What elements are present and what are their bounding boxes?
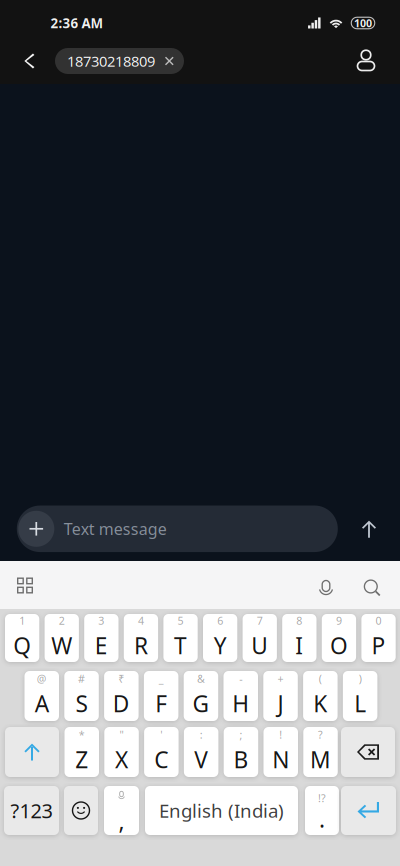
button[interactable]: Toolbar menu bbox=[5, 565, 45, 605]
staticText: A bbox=[35, 688, 49, 719]
button[interactable]: 3 bbox=[84, 614, 118, 662]
button[interactable]: # bbox=[64, 671, 99, 721]
button[interactable]: ( bbox=[303, 671, 338, 721]
staticText: ?123 bbox=[10, 797, 52, 824]
staticText: H bbox=[232, 688, 249, 719]
button[interactable]: Voice input bbox=[306, 566, 346, 606]
button[interactable]: Emoji bbox=[64, 786, 98, 835]
button[interactable]: _ bbox=[144, 671, 178, 721]
button[interactable]: Period bbox=[305, 786, 339, 835]
button[interactable]: 7 bbox=[243, 614, 277, 662]
button[interactable]: ?123 bbox=[4, 786, 59, 835]
button[interactable]: Add attachment bbox=[18, 511, 54, 547]
staticText: V bbox=[194, 744, 208, 775]
staticText: U bbox=[251, 630, 268, 660]
staticText: Text message bbox=[64, 518, 167, 539]
button[interactable]: English (India) bbox=[145, 786, 298, 835]
staticText: M bbox=[310, 744, 331, 775]
staticText: " bbox=[119, 727, 123, 742]
staticText: R bbox=[134, 630, 148, 660]
staticText: Z bbox=[75, 744, 88, 775]
staticText: K bbox=[313, 688, 327, 719]
staticText: T bbox=[174, 630, 187, 660]
staticText: @ bbox=[37, 671, 47, 686]
staticText: ? bbox=[318, 727, 323, 742]
staticText: L bbox=[354, 688, 366, 719]
staticText: I bbox=[295, 630, 303, 660]
staticText: 1 bbox=[19, 613, 25, 628]
staticText: 6 bbox=[217, 613, 223, 628]
button[interactable]: 5 bbox=[163, 614, 198, 662]
button[interactable]: Shift bbox=[5, 727, 59, 777]
staticText: E bbox=[95, 630, 108, 660]
staticText: - bbox=[239, 671, 242, 686]
staticText: O bbox=[330, 630, 348, 660]
staticText: ) bbox=[359, 671, 362, 686]
staticText: ₹ bbox=[118, 671, 124, 686]
staticText: !? bbox=[318, 791, 326, 805]
button[interactable]: @ bbox=[24, 671, 59, 721]
staticText: C bbox=[154, 744, 168, 775]
staticText: + bbox=[277, 671, 283, 686]
button[interactable]: 9 bbox=[322, 614, 356, 662]
staticText: # bbox=[78, 671, 85, 686]
staticText: ' bbox=[160, 727, 162, 742]
button[interactable]: ' bbox=[144, 727, 179, 777]
staticText: ; bbox=[239, 727, 242, 742]
button[interactable]: - bbox=[223, 671, 258, 721]
staticText: F bbox=[155, 688, 167, 719]
button[interactable]: Contact details bbox=[346, 39, 386, 83]
staticText: * bbox=[79, 727, 85, 742]
staticText: 3 bbox=[98, 613, 104, 628]
button[interactable]: ; bbox=[224, 727, 258, 777]
staticText: 9 bbox=[336, 613, 342, 628]
button[interactable]: Comma bbox=[104, 786, 139, 835]
button[interactable]: ₹ bbox=[104, 671, 139, 721]
staticText: 100 bbox=[354, 16, 372, 30]
button[interactable]: + bbox=[263, 671, 298, 721]
staticText: 0 bbox=[376, 613, 382, 628]
staticText: _ bbox=[159, 671, 164, 686]
staticText: 8 bbox=[296, 613, 302, 628]
button[interactable]: ! bbox=[263, 727, 298, 777]
button[interactable]: & bbox=[184, 671, 218, 721]
button[interactable]: 2 bbox=[45, 614, 79, 662]
staticText: Q bbox=[13, 630, 31, 660]
staticText: Y bbox=[214, 630, 227, 660]
staticText: 2 bbox=[59, 613, 65, 628]
button[interactable]: 1 bbox=[5, 614, 39, 662]
staticText: W bbox=[51, 630, 72, 660]
staticText: G bbox=[192, 688, 209, 719]
button[interactable]: Send bbox=[347, 507, 391, 551]
button[interactable]: Search bbox=[351, 566, 391, 606]
staticText: ! bbox=[279, 727, 282, 742]
staticText: X bbox=[115, 744, 128, 775]
button[interactable]: ) bbox=[343, 671, 377, 721]
button[interactable]: Backspace bbox=[341, 727, 395, 777]
button[interactable]: : bbox=[184, 727, 218, 777]
staticText: 18730218809 bbox=[67, 51, 155, 71]
button[interactable]: 18730218809 bbox=[55, 48, 184, 74]
button[interactable]: * bbox=[64, 727, 99, 777]
button[interactable]: ? bbox=[303, 727, 338, 777]
staticText: , bbox=[118, 806, 124, 836]
staticText: . bbox=[319, 804, 325, 834]
button[interactable]: 8 bbox=[282, 614, 316, 662]
staticText: D bbox=[113, 688, 130, 719]
button[interactable]: 4 bbox=[124, 614, 158, 662]
staticText: : bbox=[200, 727, 203, 742]
button[interactable]: " bbox=[104, 727, 139, 777]
button[interactable]: Return bbox=[341, 786, 396, 835]
button[interactable]: Back bbox=[9, 39, 49, 83]
staticText: S bbox=[75, 688, 87, 719]
staticText: 2:36 AM bbox=[50, 14, 103, 32]
button[interactable]: 0 bbox=[361, 614, 396, 662]
staticText: 7 bbox=[257, 613, 263, 628]
staticText: N bbox=[272, 744, 289, 775]
button[interactable]: 6 bbox=[203, 614, 237, 662]
staticText: 5 bbox=[178, 613, 184, 628]
staticText: ( bbox=[319, 671, 322, 686]
staticText: 4 bbox=[138, 613, 144, 628]
staticText: & bbox=[197, 671, 205, 686]
staticText: J bbox=[277, 688, 283, 719]
